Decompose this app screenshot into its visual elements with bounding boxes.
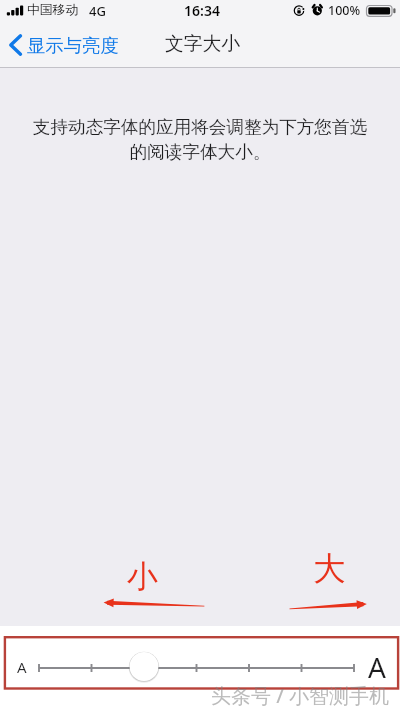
staticText: 显示与亮度 bbox=[27, 34, 119, 57]
staticText: 大 bbox=[313, 549, 346, 590]
staticText: 文字大小 bbox=[165, 32, 241, 56]
staticText: 头条号 / 小智测手机 bbox=[211, 682, 390, 709]
staticText: 4G bbox=[89, 2, 106, 20]
staticText: 中国移动 bbox=[27, 2, 79, 18]
button[interactable]: Text size slider bbox=[0, 626, 400, 711]
staticText: A bbox=[17, 657, 27, 677]
staticText: 小 bbox=[127, 557, 158, 596]
staticText: 16:34 bbox=[184, 1, 220, 20]
staticText: 支持动态字体的应用将会调整为下方您首选的阅读字体大小。 bbox=[29, 116, 371, 163]
button[interactable]: 显示与亮度 bbox=[0, 27, 124, 62]
staticText: A bbox=[368, 648, 386, 686]
staticText: 100% bbox=[328, 2, 361, 19]
